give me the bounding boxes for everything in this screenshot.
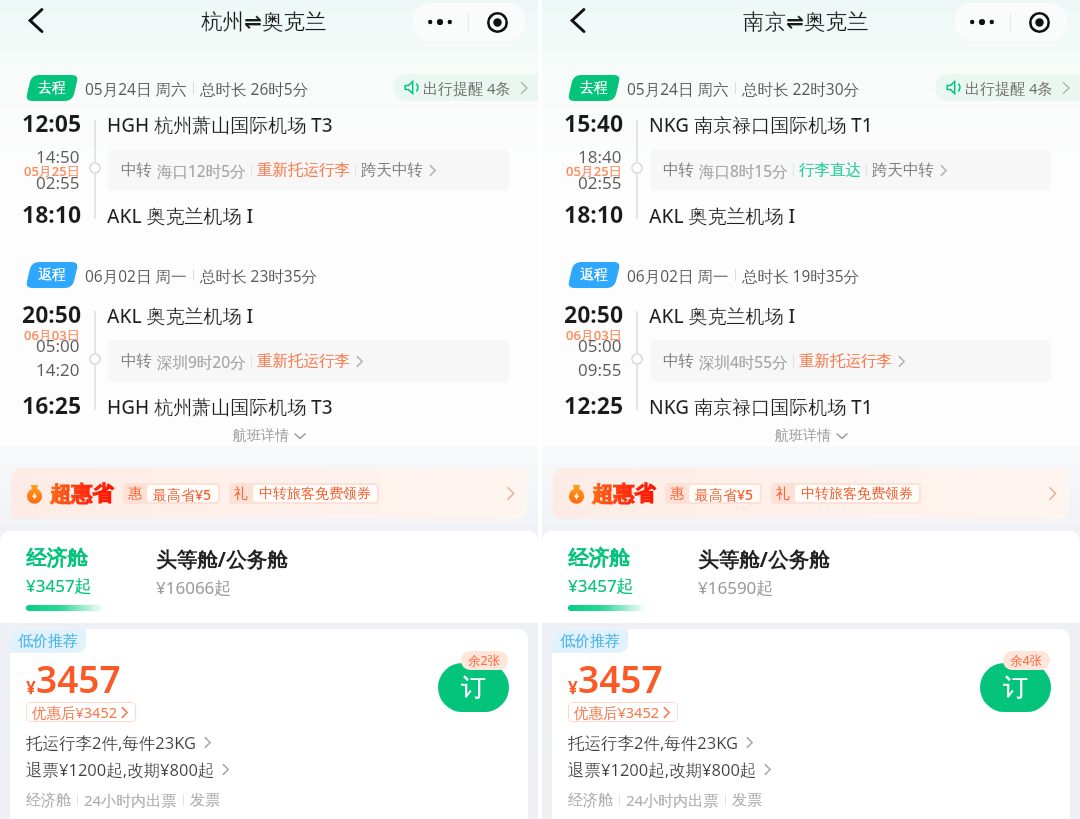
- staticText: 退票¥1200起,改期¥800起: [568, 758, 757, 781]
- button[interactable]: 出行提醒 4条: [935, 74, 1080, 101]
- staticText: 中转: [121, 160, 152, 180]
- staticText: AKL 奥克兰机场 I: [649, 203, 796, 229]
- staticText: 经济舱: [26, 545, 88, 571]
- staticText: 经济舱: [568, 791, 613, 810]
- button[interactable]: 中转: [108, 149, 509, 191]
- button[interactable]: 航班详情: [542, 424, 1080, 448]
- button[interactable]: Back: [14, 0, 58, 42]
- staticText: ¥: [568, 676, 578, 699]
- button[interactable]: 15:40: [542, 105, 1080, 230]
- staticText: 余4张: [1010, 652, 1043, 669]
- button[interactable]: 20:50: [0, 296, 538, 421]
- staticText: 低价推荐: [18, 632, 78, 651]
- button[interactable]: 低价推荐: [10, 629, 528, 819]
- staticText: 经济舱: [26, 791, 71, 810]
- button[interactable]: 中转: [650, 340, 1051, 382]
- button[interactable]: 12:05: [0, 105, 538, 230]
- button[interactable]: 低价推荐: [552, 629, 1070, 819]
- staticText: 3457: [36, 653, 121, 703]
- staticText: 中转旅客免费领券: [259, 485, 371, 502]
- staticText: 头等舱/公务舱: [156, 545, 288, 573]
- staticText: 3457: [578, 653, 663, 703]
- staticText: 余2张: [468, 652, 501, 669]
- staticText: 重新托运行李: [257, 160, 350, 180]
- staticText: 出行提醒 4条: [423, 78, 511, 98]
- staticText: 12:05: [22, 107, 82, 138]
- staticText: ¥16590起: [698, 576, 774, 599]
- staticText: 航班详情: [233, 427, 289, 445]
- button[interactable]: More options: [412, 3, 468, 41]
- button[interactable]: 中转: [650, 149, 1051, 191]
- staticText: 返程: [38, 266, 66, 284]
- staticText: 06月03日: [566, 326, 622, 344]
- staticText: 最高省¥5: [695, 485, 754, 502]
- staticText: 20:50: [22, 298, 82, 329]
- staticText: 中转: [663, 351, 694, 371]
- button[interactable]: 订: [980, 663, 1051, 712]
- button[interactable]: 退票¥1200起,改期¥800起: [26, 758, 231, 781]
- button[interactable]: Back: [556, 0, 600, 42]
- staticText: ¥: [26, 676, 36, 699]
- button[interactable]: Close: [1011, 3, 1068, 41]
- button[interactable]: 优惠后¥3452: [568, 702, 678, 722]
- staticText: 订: [1003, 672, 1028, 703]
- staticText: 06月02日 周一: [85, 265, 187, 286]
- staticText: 深圳4时55分: [699, 351, 788, 372]
- staticText: 05月25日: [24, 162, 80, 180]
- staticText: AKL 奥克兰机场 I: [107, 203, 254, 229]
- staticText: 总时长 26时5分: [200, 78, 309, 99]
- button[interactable]: 经济舱: [26, 545, 104, 611]
- staticText: 礼: [234, 485, 248, 503]
- button[interactable]: More options: [954, 3, 1010, 41]
- staticText: 海口12时5分: [157, 160, 246, 181]
- button[interactable]: 托运行李2件,每件23KG: [568, 731, 755, 754]
- button[interactable]: 20:50: [542, 296, 1080, 421]
- staticText: 12:25: [564, 389, 624, 420]
- staticText: 20:50: [564, 298, 624, 329]
- staticText: 去程: [580, 79, 608, 97]
- button[interactable]: 出行提醒 4条: [393, 74, 538, 101]
- staticText: 超惠省: [592, 481, 655, 507]
- staticText: 航班详情: [775, 427, 831, 445]
- staticText: 24小时内出票: [84, 790, 177, 810]
- button[interactable]: 托运行李2件,每件23KG: [26, 731, 213, 754]
- button[interactable]: Close: [469, 3, 526, 41]
- staticText: 02:55: [36, 171, 80, 194]
- button[interactable]: 超惠省: [11, 468, 527, 519]
- staticText: 中转: [663, 160, 694, 180]
- button[interactable]: 航班详情: [0, 424, 538, 448]
- button[interactable]: 优惠后¥3452: [26, 702, 136, 722]
- staticText: 总时长 22时30分: [742, 78, 859, 99]
- staticText: 中转旅客免费领券: [801, 485, 913, 502]
- staticText: 跨天中转: [872, 160, 934, 180]
- staticText: 18:10: [22, 198, 82, 229]
- staticText: 托运行李2件,每件23KG: [568, 731, 739, 754]
- staticText: 05:00: [578, 334, 622, 357]
- staticText: AKL 奥克兰机场 I: [107, 303, 254, 329]
- staticText: 礼: [776, 485, 790, 503]
- button[interactable]: 头等舱/公务舱: [156, 545, 288, 599]
- button[interactable]: 退票¥1200起,改期¥800起: [568, 758, 773, 781]
- staticText: 南京⇌奥克兰: [743, 8, 869, 35]
- staticText: 重新托运行李: [257, 351, 350, 371]
- staticText: 超惠省: [50, 481, 113, 507]
- staticText: 05:00: [36, 334, 80, 357]
- staticText: AKL 奥克兰机场 I: [649, 303, 796, 329]
- button[interactable]: 中转: [108, 340, 509, 382]
- button[interactable]: 超惠省: [553, 468, 1069, 519]
- staticText: 头等舱/公务舱: [698, 545, 830, 573]
- staticText: 14:20: [36, 358, 80, 381]
- staticText: 返程: [580, 266, 608, 284]
- staticText: 05月24日 周六: [627, 78, 729, 99]
- staticText: HGH 杭州萧山国际机场 T3: [107, 112, 333, 138]
- staticText: 09:55: [578, 358, 622, 381]
- staticText: ¥3457起: [568, 574, 634, 597]
- button[interactable]: 订: [438, 663, 509, 712]
- button[interactable]: 经济舱: [568, 545, 646, 611]
- staticText: 行李直达: [799, 160, 861, 180]
- staticText: 18:40: [578, 145, 622, 168]
- staticText: 托运行李2件,每件23KG: [26, 731, 197, 754]
- button[interactable]: 头等舱/公务舱: [698, 545, 830, 599]
- staticText: 06月03日: [24, 326, 80, 344]
- staticText: 总时长 23时35分: [200, 265, 317, 286]
